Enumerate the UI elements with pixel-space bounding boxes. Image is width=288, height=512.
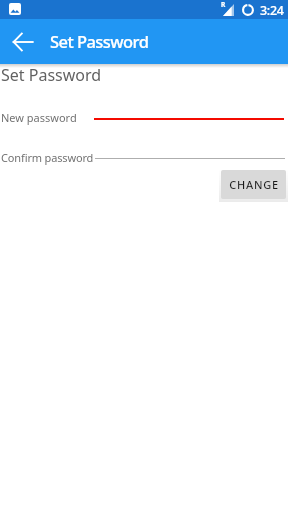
other: Screenshot notification [9,3,21,15]
staticText: 3:24 [260,2,284,19]
staticText: Confirm password [1,150,94,165]
staticText: Set Password [50,30,149,52]
button[interactable]: Back [5,24,40,59]
staticText: R [221,0,226,9]
staticText: New password [1,110,77,125]
button[interactable]: New password field [94,106,284,121]
button[interactable]: CHANGE [221,170,286,199]
staticText: Set Password [1,64,102,86]
staticText: CHANGE [229,177,279,192]
button[interactable]: Confirm password field [95,146,285,159]
